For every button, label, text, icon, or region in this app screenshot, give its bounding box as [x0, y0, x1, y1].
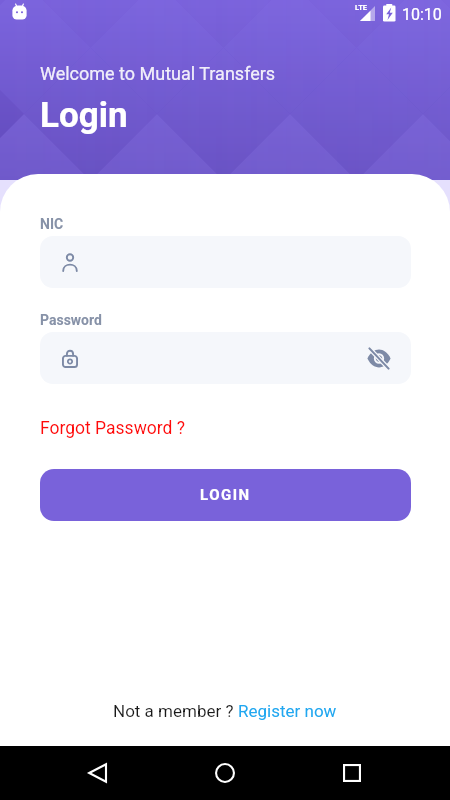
- staticText: 10:10: [402, 5, 442, 24]
- staticText: Forgot Password ?: [40, 418, 186, 439]
- button[interactable]: [40, 236, 411, 288]
- button[interactable]: Forgot Password ?: [40, 418, 186, 439]
- button[interactable]: Toggle password visibility: [40, 332, 411, 384]
- staticText: LTE: [355, 3, 368, 12]
- staticText: Not a member ?: [113, 701, 238, 721]
- button[interactable]: LOGIN: [40, 469, 411, 521]
- button[interactable]: Register now: [238, 701, 337, 721]
- staticText: Login: [40, 95, 128, 136]
- staticText: Welcome to Mutual Transfers: [40, 63, 276, 84]
- staticText: NIC: [40, 216, 64, 232]
- button[interactable]: Home: [185, 746, 265, 800]
- button[interactable]: Recents: [312, 746, 392, 800]
- staticText: LOGIN: [200, 486, 251, 504]
- staticText: Password: [40, 312, 102, 328]
- button[interactable]: Toggle password visibility: [367, 347, 391, 370]
- staticText: Register now: [238, 701, 337, 721]
- button[interactable]: Back: [58, 746, 138, 800]
